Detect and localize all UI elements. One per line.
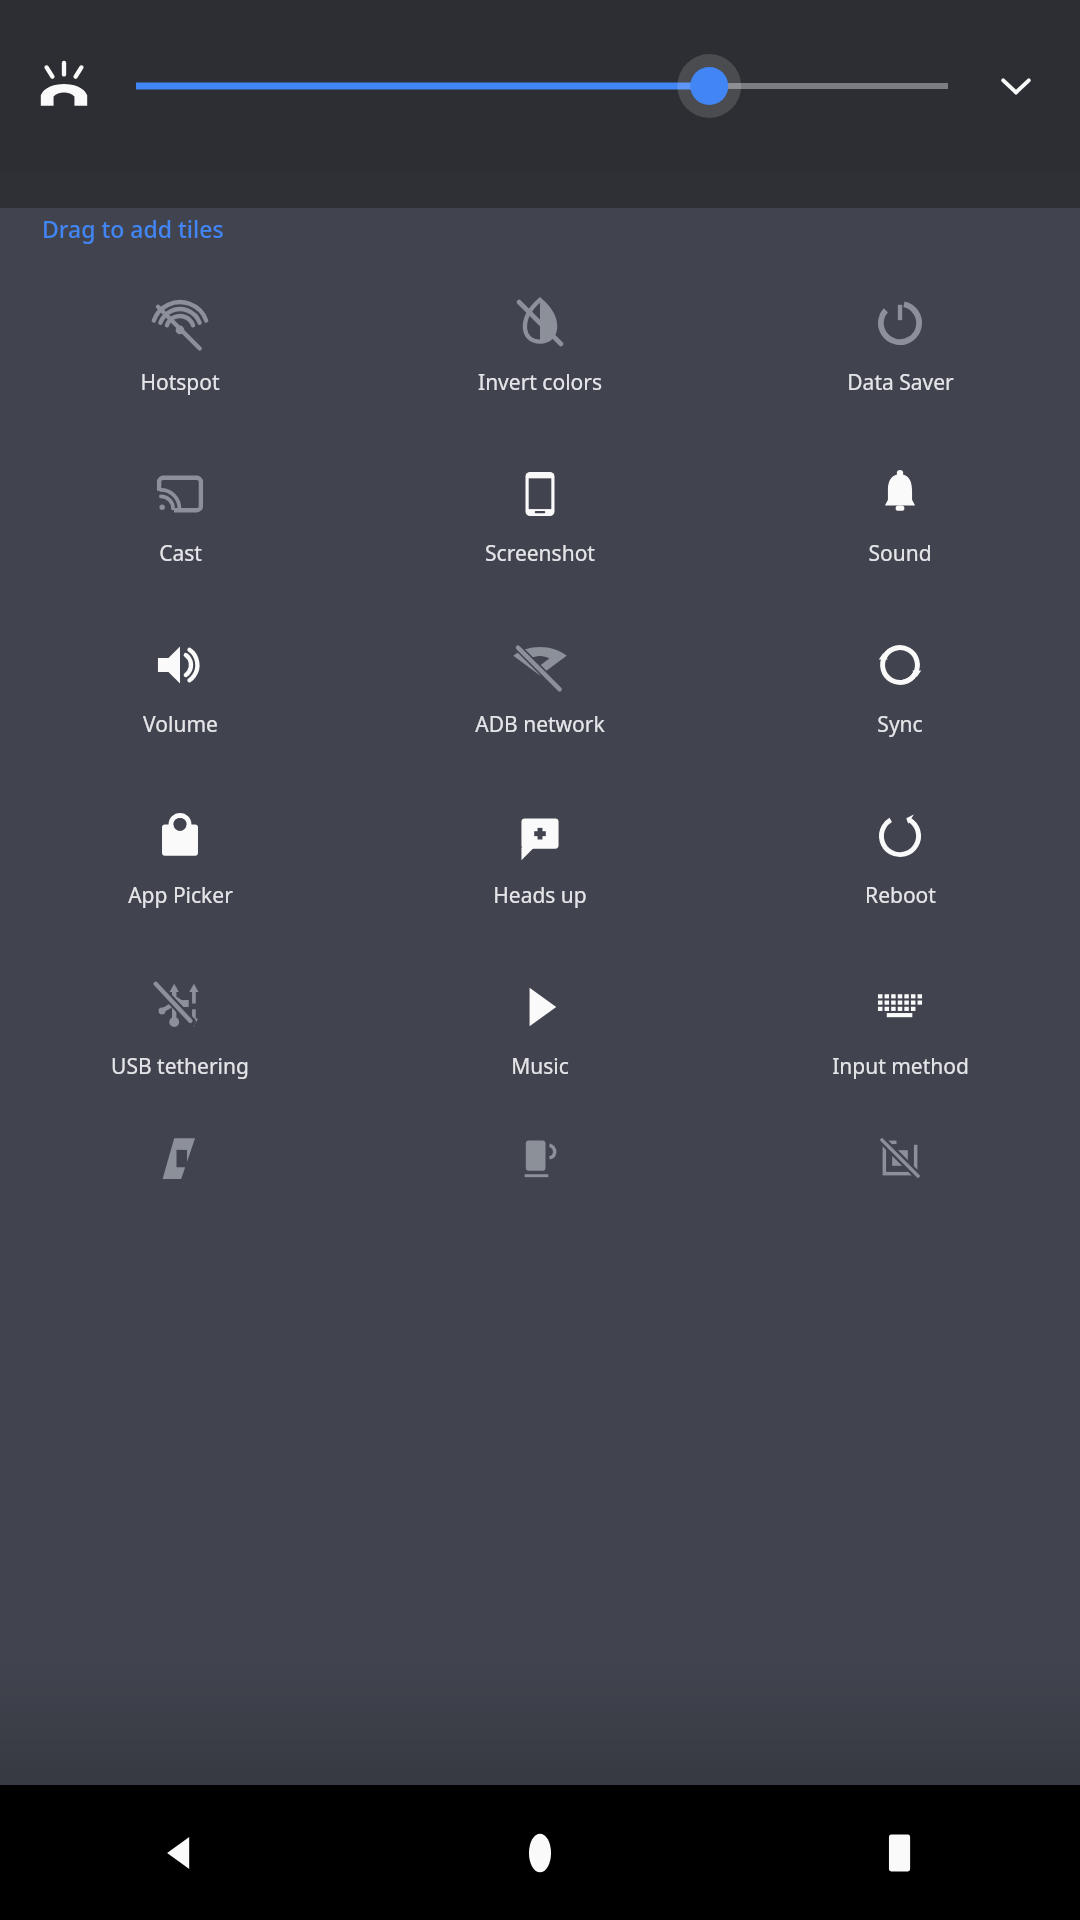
staticText: Volume bbox=[143, 710, 218, 739]
button[interactable]: Caffeine bbox=[360, 1129, 720, 1785]
staticText: Drag to add tiles bbox=[42, 213, 224, 244]
button[interactable]: Cast bbox=[0, 445, 360, 616]
staticText: Music bbox=[511, 1052, 569, 1081]
button[interactable]: Ringer mode bbox=[26, 48, 102, 124]
button[interactable]: Volume bbox=[0, 616, 360, 787]
button[interactable]: Recents bbox=[720, 1785, 1080, 1920]
button[interactable]: Flashlight bbox=[0, 1129, 360, 1785]
staticText: Sync bbox=[877, 710, 923, 739]
button[interactable]: Expand bbox=[978, 48, 1054, 124]
button[interactable]: Sound bbox=[720, 445, 1080, 616]
staticText: App Picker bbox=[128, 881, 233, 910]
button[interactable]: Music bbox=[360, 958, 720, 1129]
button[interactable]: Sync bbox=[720, 616, 1080, 787]
button[interactable]: NFC off bbox=[720, 1129, 1080, 1785]
staticText: Invert colors bbox=[478, 368, 602, 397]
button[interactable]: Hotspot bbox=[0, 274, 360, 445]
staticText: ADB network bbox=[475, 710, 605, 739]
staticText: Hotspot bbox=[140, 368, 220, 397]
staticText: Sound bbox=[868, 539, 932, 568]
button[interactable]: Screenshot bbox=[360, 445, 720, 616]
button[interactable]: Input method bbox=[720, 958, 1080, 1129]
button[interactable]: Volume slider bbox=[136, 48, 948, 124]
button[interactable]: Home bbox=[360, 1785, 720, 1920]
button[interactable]: App Picker bbox=[0, 787, 360, 958]
button[interactable]: Heads up bbox=[360, 787, 720, 958]
button[interactable]: Back bbox=[0, 1785, 360, 1920]
staticText: Reboot bbox=[865, 881, 936, 910]
button[interactable]: Invert colors bbox=[360, 274, 720, 445]
button[interactable]: ADB network bbox=[360, 616, 720, 787]
button[interactable]: Data Saver bbox=[720, 274, 1080, 445]
staticText: Screenshot bbox=[485, 539, 595, 568]
staticText: Heads up bbox=[493, 881, 587, 910]
staticText: USB tethering bbox=[111, 1052, 249, 1081]
staticText: Input method bbox=[832, 1052, 969, 1081]
button[interactable]: USB tethering bbox=[0, 958, 360, 1129]
staticText: Cast bbox=[159, 539, 202, 568]
staticText: Data Saver bbox=[847, 368, 954, 397]
button[interactable]: Reboot bbox=[720, 787, 1080, 958]
